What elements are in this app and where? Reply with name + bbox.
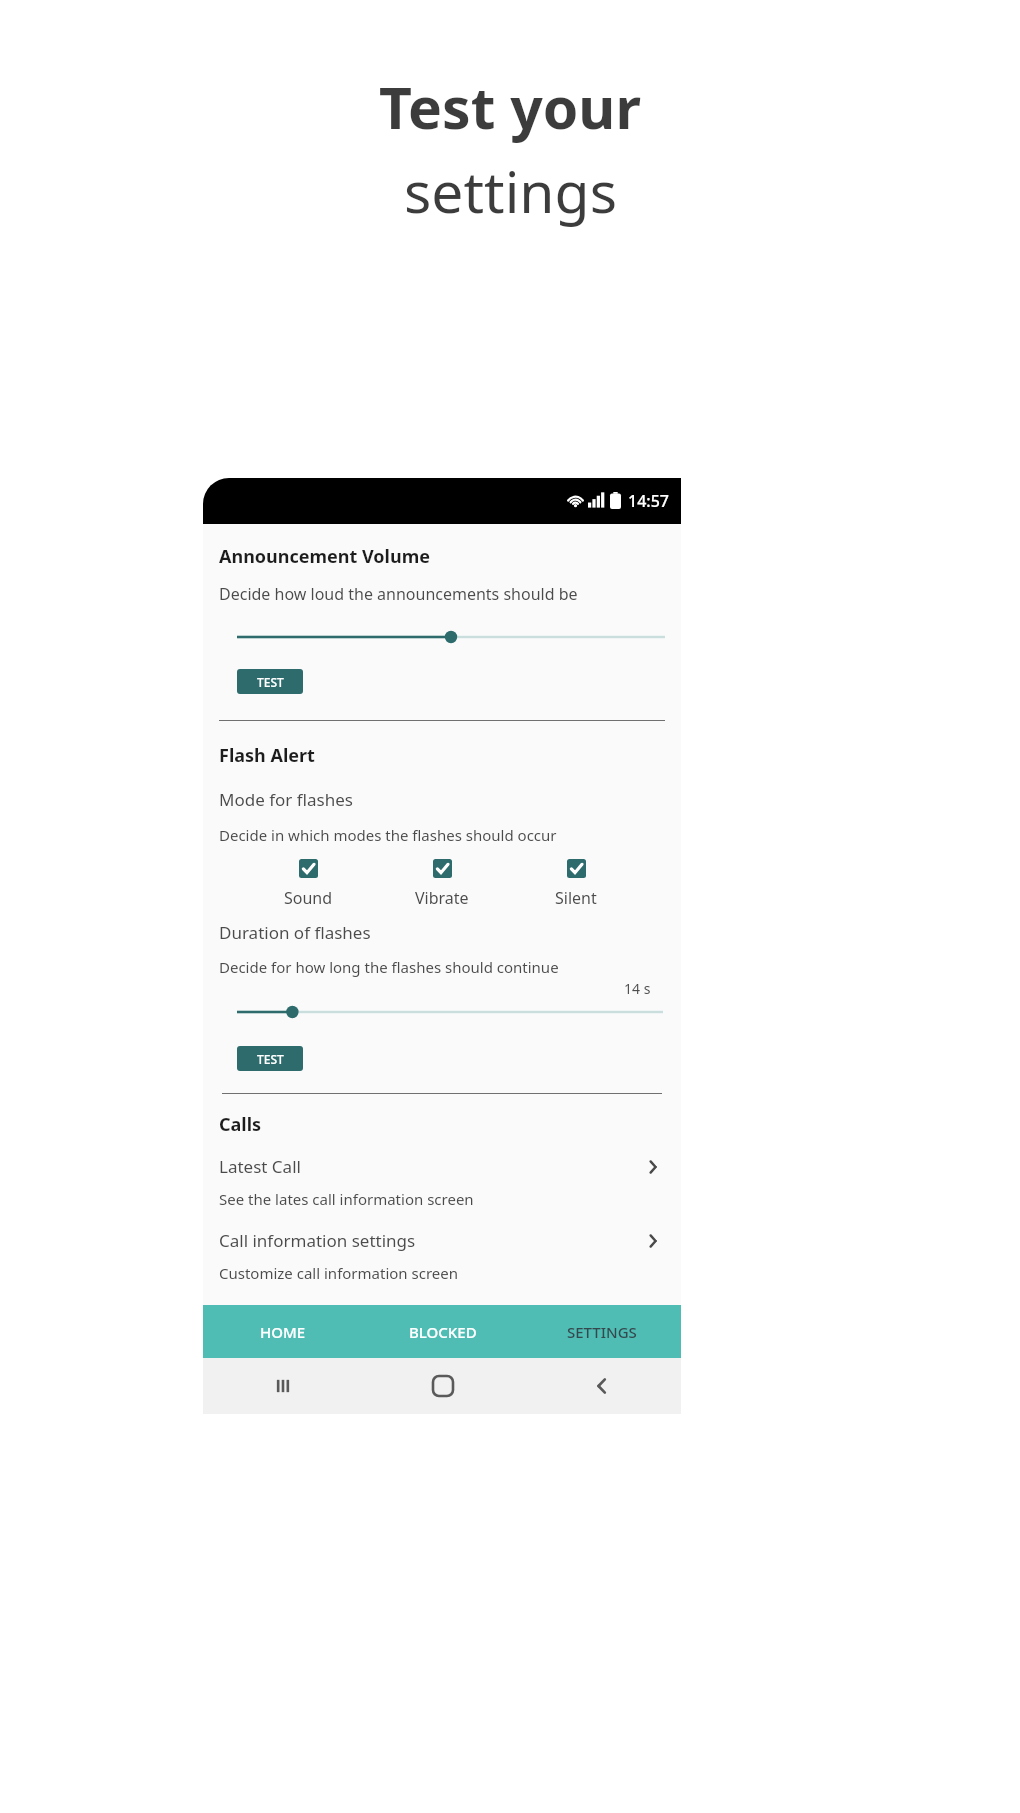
button[interactable]	[237, 627, 665, 647]
staticText: Customize call information screen	[219, 1263, 458, 1283]
staticText: Announcement Volume	[219, 544, 430, 569]
button[interactable]: Sound	[241, 859, 375, 909]
button[interactable]	[237, 1002, 663, 1022]
staticText: Flash Alert	[219, 743, 315, 768]
button[interactable]: TEST	[237, 669, 303, 694]
button[interactable]: SETTINGS	[522, 1305, 681, 1358]
staticText: 14:57	[628, 490, 669, 512]
button[interactable]: TEST	[237, 1046, 303, 1071]
button[interactable]: Recents	[203, 1358, 363, 1414]
staticText: TEST	[257, 674, 284, 690]
staticText: Silent	[555, 887, 597, 909]
button[interactable]: BLOCKED	[363, 1305, 522, 1358]
staticText: Sound	[284, 887, 333, 909]
button[interactable]: Vibrate	[375, 859, 509, 909]
staticText: Decide in which modes the flashes should…	[219, 825, 557, 845]
staticText: HOME	[260, 1322, 306, 1342]
button[interactable]: Home	[363, 1358, 522, 1414]
staticText: TEST	[257, 1051, 284, 1067]
staticText: See the lates call information screen	[219, 1189, 474, 1209]
staticText: Mode for flashes	[219, 788, 353, 811]
button[interactable]: Silent	[509, 859, 643, 909]
staticText: settings	[404, 152, 617, 230]
staticText: Test your	[379, 68, 641, 146]
staticText: 14 s	[624, 979, 651, 998]
staticText: Call information settings	[219, 1229, 645, 1252]
button[interactable]: Back	[522, 1358, 681, 1414]
button[interactable]: Latest Call	[219, 1155, 665, 1209]
staticText: SETTINGS	[567, 1322, 637, 1342]
staticText: Duration of flashes	[219, 921, 371, 944]
button[interactable]: HOME	[203, 1305, 363, 1358]
staticText: Latest Call	[219, 1155, 645, 1178]
staticText: Decide for how long the flashes should c…	[219, 957, 559, 977]
staticText: Calls	[219, 1112, 262, 1137]
staticText: Decide how loud the announcements should…	[219, 583, 578, 605]
staticText: BLOCKED	[409, 1322, 477, 1342]
staticText: Vibrate	[415, 887, 469, 909]
button[interactable]: Call information settings	[219, 1229, 665, 1283]
